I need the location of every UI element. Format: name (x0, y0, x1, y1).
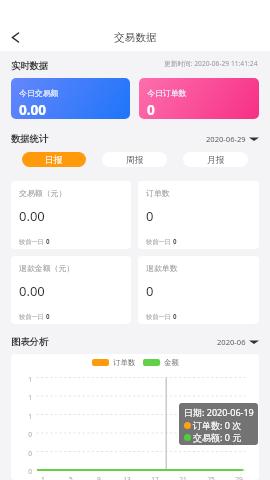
button[interactable]: 日报 (22, 152, 86, 167)
staticText: 周报 (126, 155, 144, 166)
staticText: 0 (147, 100, 155, 119)
staticText: 退款单数 (146, 263, 178, 273)
staticText: 交易额（元） (19, 188, 67, 198)
staticText: 5 (65, 475, 77, 480)
staticText: 图表分析 (11, 336, 49, 348)
button[interactable]: 退款单数 (138, 256, 259, 324)
staticText: 0 (46, 237, 50, 245)
button[interactable]: Back (7, 25, 27, 45)
staticText: 0 (27, 430, 32, 439)
staticText: 29 (233, 475, 245, 480)
staticText: 0 (27, 467, 32, 476)
staticText: 订单数 (113, 358, 136, 367)
button[interactable]: 2020-06-29 (206, 134, 259, 144)
staticText: 1 (27, 393, 32, 402)
staticText: 9 (93, 475, 105, 480)
staticText: 0 (27, 449, 32, 458)
button[interactable]: 今日交易额 (11, 78, 130, 119)
button[interactable]: 退款金额（元） (11, 256, 131, 324)
staticText: 交易数据 (114, 31, 157, 44)
staticText: 退款金额（元） (19, 263, 75, 273)
staticText: 17 (149, 475, 161, 480)
staticText: 订单数: 0 次 (193, 419, 242, 431)
staticText: 0 (46, 312, 50, 320)
staticText: 1 (27, 375, 32, 384)
staticText: 较前一日 (19, 237, 46, 245)
staticText: 0 (146, 282, 154, 300)
button[interactable]: 月报 (183, 152, 248, 167)
staticText: 1 (27, 412, 32, 421)
staticText: 0.00 (19, 207, 45, 225)
button[interactable]: 今日订单数 (139, 78, 259, 119)
staticText: 2020-06-29 (206, 134, 246, 144)
staticText: 月报 (207, 155, 225, 166)
button[interactable]: 交易额（元） (11, 181, 131, 249)
button[interactable]: 订单数 (138, 181, 259, 249)
staticText: 2020-06 (217, 337, 246, 347)
staticText: 1 (37, 475, 49, 480)
staticText: 0 (146, 207, 154, 225)
staticText: 订单数 (146, 188, 170, 198)
staticText: 交易额: 0 元 (193, 431, 242, 443)
staticText: 日报 (45, 155, 63, 166)
staticText: 金额 (164, 358, 179, 367)
staticText: 数据统计 (11, 133, 49, 145)
staticText: 25 (205, 475, 217, 480)
staticText: 13 (121, 475, 133, 480)
staticText: 0 (173, 237, 177, 245)
button[interactable]: 周报 (102, 152, 167, 167)
staticText: 较前一日 (146, 237, 173, 245)
staticText: 实时数据 (11, 60, 49, 72)
staticText: 0.00 (19, 100, 47, 119)
staticText: 0.00 (19, 282, 45, 300)
staticText: 更新时间: 2020-06-29 11:41:24 (164, 59, 258, 68)
staticText: 今日订单数 (147, 88, 187, 98)
button[interactable]: 2020-06 (217, 337, 259, 347)
staticText: 较前一日 (146, 312, 173, 320)
staticText: 较前一日 (19, 312, 46, 320)
staticText: 21 (177, 475, 189, 480)
staticText: 日期: 2020-06-19 (184, 406, 254, 418)
staticText: 0 (173, 312, 177, 320)
staticText: 今日交易额 (19, 88, 59, 98)
